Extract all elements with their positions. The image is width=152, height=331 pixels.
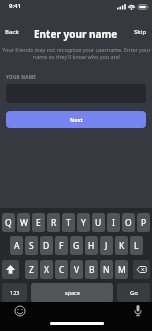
button[interactable] bbox=[130, 302, 146, 319]
button[interactable]: R bbox=[47, 213, 60, 232]
staticText: W bbox=[20, 217, 28, 229]
button[interactable]: B bbox=[85, 260, 98, 279]
button[interactable]: D bbox=[40, 236, 53, 255]
staticText: H bbox=[88, 240, 95, 252]
staticText: Y bbox=[81, 217, 86, 229]
staticText: 9:41 bbox=[9, 2, 21, 10]
button[interactable]: S bbox=[25, 236, 38, 255]
staticText: Z bbox=[29, 264, 34, 276]
button[interactable]: Go bbox=[117, 283, 150, 302]
staticText: space bbox=[65, 289, 80, 296]
button[interactable]: A bbox=[10, 236, 23, 255]
staticText: B bbox=[89, 264, 95, 276]
staticText: U bbox=[95, 217, 102, 229]
button[interactable]: C bbox=[55, 260, 68, 279]
staticText: X bbox=[44, 264, 49, 276]
button[interactable]: Skip bbox=[122, 26, 152, 38]
button[interactable]: F bbox=[55, 236, 68, 255]
staticText: J bbox=[105, 240, 108, 252]
staticText: G bbox=[73, 240, 80, 252]
button[interactable]: E bbox=[32, 213, 45, 232]
staticText: C bbox=[59, 264, 65, 276]
staticText: K bbox=[119, 240, 125, 252]
staticText: N bbox=[103, 264, 110, 276]
staticText: P bbox=[141, 217, 147, 229]
staticText: F bbox=[59, 240, 64, 252]
button[interactable]: I bbox=[107, 213, 120, 232]
button[interactable]: G bbox=[70, 236, 83, 255]
staticText: Skip bbox=[134, 28, 147, 36]
button[interactable]: 123 bbox=[2, 283, 27, 302]
staticText: L bbox=[134, 240, 139, 252]
button[interactable]: space bbox=[31, 283, 113, 302]
button[interactable]: P bbox=[137, 213, 150, 232]
staticText: 123 bbox=[10, 289, 20, 296]
button[interactable]: Next bbox=[6, 111, 146, 128]
button[interactable]: Z bbox=[25, 260, 38, 279]
button[interactable]: Q bbox=[2, 213, 15, 232]
button[interactable]: V bbox=[70, 260, 83, 279]
staticText: A bbox=[14, 240, 20, 252]
staticText: Back bbox=[5, 28, 20, 36]
staticText: Next bbox=[70, 116, 83, 123]
staticText: E bbox=[36, 217, 41, 229]
staticText: M bbox=[118, 264, 126, 276]
staticText: Go bbox=[130, 289, 138, 297]
button[interactable]: M bbox=[115, 260, 128, 279]
button[interactable]: O bbox=[122, 213, 135, 232]
button[interactable] bbox=[12, 303, 28, 319]
staticText: I bbox=[112, 217, 115, 229]
staticText: S bbox=[29, 240, 34, 252]
button[interactable]: K bbox=[115, 236, 128, 255]
staticText: V bbox=[74, 264, 80, 276]
staticText: R bbox=[51, 217, 57, 229]
staticText: T bbox=[66, 217, 71, 229]
button[interactable]: X bbox=[40, 260, 53, 279]
button[interactable]: T bbox=[62, 213, 75, 232]
button[interactable]: Y bbox=[77, 213, 90, 232]
button[interactable]: L bbox=[130, 236, 143, 255]
button[interactable]: J bbox=[100, 236, 113, 255]
button[interactable] bbox=[2, 260, 19, 279]
button[interactable]: W bbox=[17, 213, 30, 232]
staticText: YOUR NAME bbox=[6, 74, 37, 80]
button[interactable] bbox=[133, 260, 150, 279]
button[interactable]: U bbox=[92, 213, 105, 232]
staticText: D bbox=[43, 240, 50, 252]
button[interactable]: Back bbox=[0, 26, 30, 38]
staticText: O bbox=[125, 217, 132, 229]
staticText: Enter your name bbox=[34, 27, 118, 41]
staticText: Your friends may not recognize your user… bbox=[2, 46, 151, 60]
button[interactable]: H bbox=[85, 236, 98, 255]
staticText: Q bbox=[5, 217, 12, 229]
button[interactable]: N bbox=[100, 260, 113, 279]
